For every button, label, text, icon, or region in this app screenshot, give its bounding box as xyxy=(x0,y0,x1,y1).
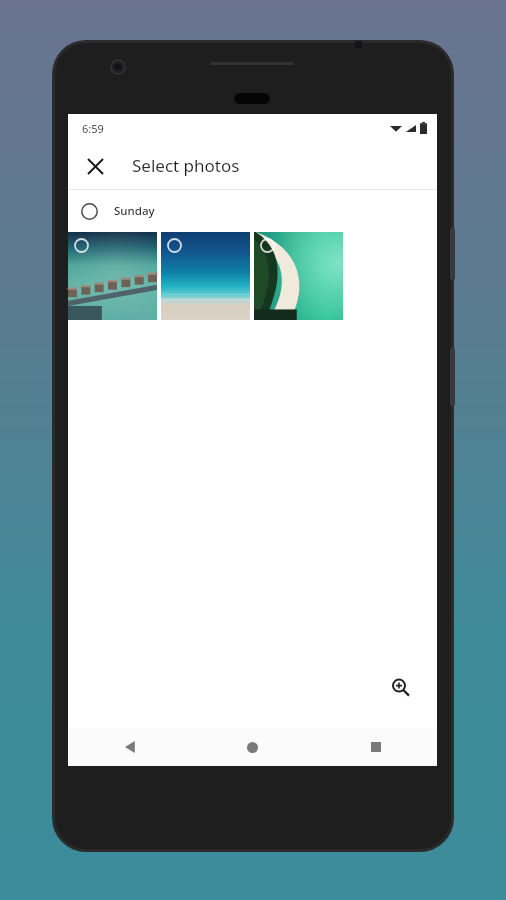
button[interactable]: Home xyxy=(191,728,314,766)
button[interactable]: Photo 3 xyxy=(254,232,343,320)
staticText: Sunday xyxy=(114,203,155,219)
staticText: 6:59 xyxy=(82,121,104,136)
staticText: Select photos xyxy=(132,154,240,177)
button[interactable]: Zoom in xyxy=(375,662,427,714)
button[interactable]: Photo 2 xyxy=(161,232,250,320)
button[interactable]: Close xyxy=(76,147,114,185)
button[interactable]: Sunday xyxy=(68,190,437,232)
button[interactable]: Recents xyxy=(314,728,437,766)
button[interactable]: Back xyxy=(68,728,191,766)
button[interactable]: Photo 1 xyxy=(68,232,157,320)
